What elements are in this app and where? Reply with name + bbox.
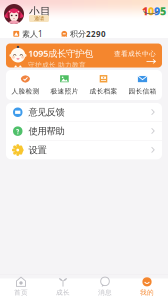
staticText: 查看成长中心: [114, 50, 156, 58]
staticText: 0: [148, 4, 154, 18]
button[interactable]: 意见反馈: [6, 103, 162, 121]
button[interactable]: 使用帮助: [6, 122, 162, 140]
staticText: 我的: [140, 288, 154, 297]
button[interactable]: 人脸检测: [6, 70, 45, 100]
button[interactable]: 我的: [126, 276, 168, 297]
button[interactable]: 邀请: [29, 15, 49, 22]
staticText: 意见反馈: [28, 106, 64, 118]
staticText: 成长档案: [89, 87, 117, 95]
staticText: 小目: [29, 5, 51, 18]
staticText: 1: [142, 4, 148, 18]
staticText: 极速照片: [50, 87, 78, 95]
staticText: 成长: [56, 288, 70, 297]
staticText: 积分: [70, 29, 86, 39]
staticText: 守护成长 助力教育: [28, 61, 86, 69]
staticText: 素人1: [22, 28, 43, 39]
staticText: 使用帮助: [28, 125, 64, 137]
button[interactable]: 消息: [84, 276, 126, 297]
staticText: 园长信箱: [128, 87, 156, 95]
staticText: 设置: [28, 144, 46, 156]
button[interactable]: 1095成长守护包: [6, 43, 162, 67]
staticText: 邀请: [34, 15, 44, 22]
staticText: 1095成长守护包: [28, 47, 93, 59]
button[interactable]: 极速照片: [45, 70, 84, 100]
button[interactable]: 成长: [42, 276, 84, 297]
button[interactable]: 设置: [6, 141, 162, 159]
button[interactable]: 成长档案: [84, 70, 123, 100]
staticText: 9: [154, 4, 160, 18]
staticText: 人脸检测: [11, 87, 39, 95]
staticText: 2290: [86, 28, 106, 39]
staticText: 首页: [14, 288, 28, 297]
staticText: 消息: [98, 288, 112, 297]
staticText: 5: [160, 4, 166, 18]
button[interactable]: 园长信箱: [123, 70, 162, 100]
button[interactable]: 首页: [0, 276, 42, 297]
